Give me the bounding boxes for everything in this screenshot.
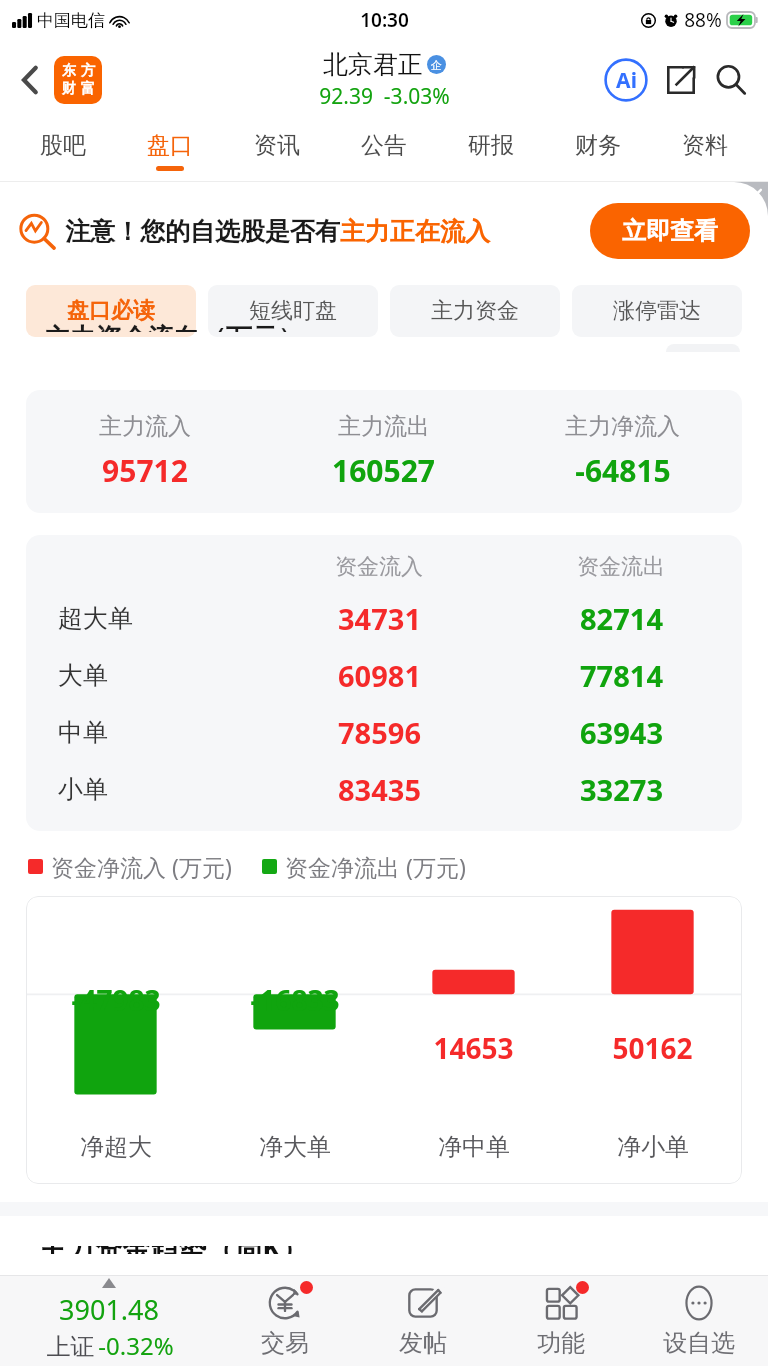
staticText: 东 <box>62 62 76 80</box>
staticText: 富 <box>81 80 95 98</box>
staticText: -16833 <box>250 981 340 1019</box>
staticText: 公告 <box>361 131 407 160</box>
button[interactable]: 3901.48 <box>0 1276 216 1366</box>
staticText: -64815 <box>575 450 671 491</box>
staticText: 立即查看 <box>622 216 718 246</box>
staticText: 资金流入 <box>335 553 423 581</box>
button[interactable]: 注意！您的自选股是否有 <box>18 182 750 280</box>
staticText: 82714 <box>580 599 663 638</box>
staticText: 注意！您的自选股是否有 <box>65 216 340 247</box>
staticText: 资讯 <box>254 131 300 160</box>
button[interactable]: 资讯 <box>223 120 330 182</box>
staticText: 资金净流入 (万元) <box>51 851 232 882</box>
staticText: 净小单 <box>617 1132 689 1162</box>
staticText: 资料 <box>682 131 728 160</box>
staticText: Ai <box>616 66 637 95</box>
staticText: 14653 <box>433 1029 514 1067</box>
button[interactable]: 盘口必读 <box>26 285 196 337</box>
staticText: 交易 <box>261 1328 309 1358</box>
button[interactable]: 东方财富 <box>54 56 102 104</box>
staticText: 财 <box>62 80 76 98</box>
staticText: 95712 <box>102 450 188 491</box>
button[interactable]: 涨停雷达 <box>572 285 742 337</box>
staticText: 涨停雷达 <box>613 297 701 325</box>
staticText: 企 <box>431 58 442 72</box>
button[interactable]: 立即查看 <box>590 203 750 259</box>
button[interactable]: 研报 <box>437 120 544 182</box>
staticText: 60981 <box>338 656 421 695</box>
button[interactable]: Close <box>734 182 768 216</box>
staticText: 净超大 <box>80 1132 152 1162</box>
staticText: 主力净流入 <box>565 412 680 441</box>
staticText: 大单 <box>58 660 108 691</box>
staticText: 3901.48 <box>59 1291 159 1328</box>
button[interactable]: 资金流入 <box>26 535 742 831</box>
button[interactable]: 发帖 <box>354 1276 492 1366</box>
staticText: 63943 <box>580 713 663 752</box>
staticText: 主力资金流向（万元） <box>44 322 304 332</box>
staticText: 主力资金 <box>431 297 519 325</box>
staticText: 主力资金趋势（周K） <box>38 1246 309 1254</box>
button[interactable]: 资料 <box>651 120 758 182</box>
button[interactable]: 功能 <box>492 1276 630 1366</box>
button[interactable]: 主力资金 <box>390 285 560 337</box>
button[interactable]: Back <box>8 58 52 102</box>
button[interactable]: -47983 <box>26 896 742 1184</box>
staticText: 主力流入 <box>99 412 191 441</box>
staticText: 主力流出 <box>338 412 430 441</box>
button[interactable]: 财务 <box>544 120 651 182</box>
staticText: 88% <box>684 7 722 33</box>
button[interactable]: 股吧 <box>10 120 116 182</box>
staticText: 主力正在流入 <box>340 216 490 247</box>
staticText: 功能 <box>537 1328 585 1358</box>
button[interactable]: Share <box>658 57 704 103</box>
staticText: 超大单 <box>58 603 133 634</box>
staticText: 50162 <box>612 1029 693 1067</box>
staticText: 中单 <box>58 717 108 748</box>
staticText: 设自选 <box>663 1328 735 1358</box>
staticText: 83435 <box>338 770 421 809</box>
staticText: 77814 <box>580 656 663 695</box>
staticText: 发帖 <box>399 1328 447 1358</box>
button[interactable]: 短线盯盘 <box>208 285 378 337</box>
staticText: 34731 <box>338 599 421 638</box>
button[interactable]: 公告 <box>330 120 437 182</box>
button[interactable]: 设自选 <box>630 1276 768 1366</box>
staticText: 160527 <box>332 450 435 491</box>
staticText: 资金流出 <box>577 553 665 581</box>
staticText: 78596 <box>338 713 421 752</box>
button[interactable]: 盘口 <box>116 120 223 182</box>
staticText: 北京君正 <box>323 49 423 80</box>
staticText: 盘口 <box>147 131 193 160</box>
staticText: 研报 <box>468 131 514 160</box>
staticText: 短线盯盘 <box>249 297 337 325</box>
staticText: 净大单 <box>259 1132 331 1162</box>
button[interactable]: AI <box>602 56 650 104</box>
button[interactable]: 交易 <box>216 1276 354 1366</box>
staticText: 小单 <box>58 774 108 805</box>
staticText: 财务 <box>575 131 621 160</box>
staticText: -0.32% <box>98 1329 174 1362</box>
staticText: 33273 <box>580 770 663 809</box>
staticText: 上证 <box>43 1329 98 1362</box>
staticText: 净中单 <box>438 1132 510 1162</box>
staticText: 资金净流出 (万元) <box>285 851 466 882</box>
staticText: 盘口必读 <box>67 297 155 325</box>
button[interactable]: 主力流入 <box>26 390 742 513</box>
staticText: -47983 <box>71 981 161 1019</box>
staticText: 92.39 -3.03% <box>319 82 450 111</box>
staticText: 方 <box>81 62 95 80</box>
staticText: 10:30 <box>360 7 409 33</box>
button[interactable]: Search <box>708 57 754 103</box>
staticText: 中国电信 <box>37 10 105 31</box>
staticText: 股吧 <box>40 131 86 160</box>
